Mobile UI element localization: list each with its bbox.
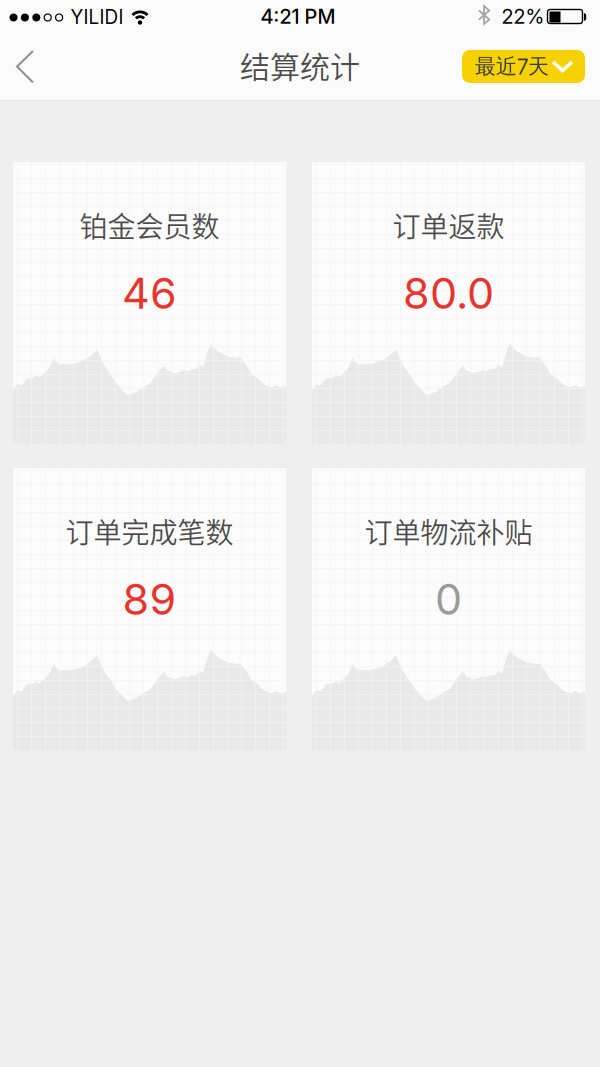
- button[interactable]: 最近7天: [462, 50, 585, 83]
- staticText: YILIDI: [70, 6, 123, 28]
- staticText: 订单完成笔数: [65, 511, 233, 551]
- staticText: 46: [122, 268, 177, 318]
- staticText: 0: [435, 574, 462, 624]
- staticText: 89: [122, 574, 176, 624]
- staticText: 结算统计: [240, 43, 360, 87]
- staticText: 订单返款: [392, 205, 504, 245]
- staticText: 4:21 PM: [260, 5, 335, 28]
- button[interactable]: Back: [8, 48, 44, 86]
- staticText: 订单物流补贴: [364, 511, 532, 551]
- staticText: 铂金会员数: [79, 205, 219, 245]
- staticText: 最近7天: [475, 54, 549, 79]
- staticText: 80.0: [403, 268, 494, 318]
- staticText: 22%: [501, 5, 544, 28]
